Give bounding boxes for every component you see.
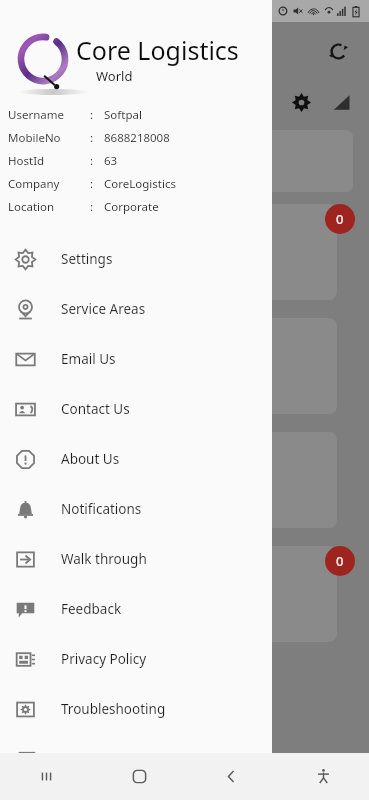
staticText: 63 (104, 153, 118, 169)
button[interactable]: Settings (0, 234, 272, 284)
staticText: 0 (336, 552, 344, 570)
staticText: : (90, 199, 94, 215)
button[interactable]: Contact Us (0, 384, 272, 434)
staticText: World (96, 67, 133, 85)
staticText: Softpal (104, 107, 142, 123)
staticText: HostId (8, 153, 45, 169)
staticText: 0 (336, 210, 344, 228)
staticText: MobileNo (8, 130, 61, 146)
staticText: Company (8, 176, 60, 192)
button[interactable]: equest (20, 204, 337, 300)
staticText: : (90, 153, 94, 169)
button[interactable]: Settings (286, 87, 316, 117)
staticText: Undelivered (151, 137, 223, 153)
staticText: Settings (61, 250, 113, 268)
button[interactable]: ery (20, 546, 337, 642)
staticText: Corporate (104, 199, 159, 215)
staticText: Core Logistics (76, 33, 239, 67)
staticText: Username (8, 107, 64, 123)
staticText: About Us (61, 450, 120, 468)
button[interactable]: to Agent (20, 318, 337, 414)
button[interactable]: Back (185, 753, 277, 800)
staticText: Feedback (61, 600, 122, 618)
staticText: Service Areas (61, 300, 146, 318)
staticText: Location (8, 199, 55, 215)
staticText: : (90, 130, 94, 146)
button[interactable]: Walk through (0, 534, 272, 584)
button[interactable]: Feedback (0, 584, 272, 634)
button[interactable]: Home (93, 753, 185, 800)
staticText: Email Us (61, 350, 116, 368)
staticText: Contact Us (61, 400, 130, 418)
staticText: CoreLogistics (104, 176, 176, 192)
button[interactable]: Service Areas (0, 284, 272, 334)
staticText: : (90, 107, 94, 123)
button[interactable]: Notifications (0, 484, 272, 534)
button[interactable]: hicle (20, 432, 337, 528)
button[interactable]: Refresh (321, 34, 355, 68)
button[interactable]: Email Us (0, 334, 272, 384)
button[interactable]: Accessibility (277, 753, 369, 800)
staticText: Notifications (61, 500, 142, 518)
button[interactable]: About Us (0, 434, 272, 484)
button[interactable]: Troubleshooting (0, 684, 272, 734)
staticText: 8688218008 (104, 130, 170, 146)
button[interactable]: Undelivered (20, 130, 353, 192)
staticText: Walk through (61, 550, 147, 568)
staticText: Troubleshooting (61, 700, 166, 718)
staticText: : (90, 176, 94, 192)
staticText: Privacy Policy (61, 650, 147, 668)
button[interactable]: Recents (0, 753, 93, 800)
button[interactable]: 3rd party licenses (0, 734, 272, 784)
button[interactable]: Privacy Policy (0, 634, 272, 684)
